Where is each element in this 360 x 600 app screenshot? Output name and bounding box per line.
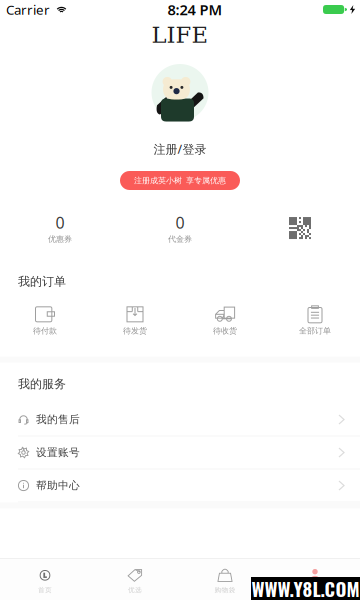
button[interactable]: 我的售后 (0, 403, 360, 436)
staticText: 购物袋 (214, 586, 235, 594)
staticText: 8:24 PM (167, 0, 222, 19)
button[interactable]: 帮助中心 (0, 469, 360, 502)
button[interactable]: 待收货 (180, 306, 270, 336)
button[interactable]: 注册成英小树 享专属优惠 (120, 171, 240, 190)
button[interactable]: 注册/登录 (153, 121, 206, 156)
staticText: 首页 (38, 586, 52, 594)
staticText: 注册/登录 (153, 141, 206, 157)
button[interactable]: 购物袋 (180, 569, 270, 594)
staticText: 代金券 (168, 234, 192, 244)
button[interactable]: 扫一扫 (240, 214, 360, 241)
staticText: 我的售后 (36, 413, 80, 426)
button[interactable]: 全部订单 (270, 306, 360, 336)
button[interactable]: 0 (0, 212, 120, 244)
button[interactable]: 首页 (0, 569, 90, 594)
staticText: WWW.Y8L.COM (251, 575, 359, 600)
staticText: 0 (175, 212, 184, 233)
staticText: 我的服务 (18, 377, 66, 391)
staticText: 帮助中心 (36, 479, 80, 492)
staticText: 设置账号 (36, 446, 80, 459)
staticText: Carrier (6, 1, 50, 18)
staticText: 0 (55, 212, 64, 233)
staticText: 全部订单 (299, 326, 331, 336)
staticText: LIFE (151, 22, 208, 48)
staticText: 我的 (308, 586, 322, 594)
button[interactable]: 我的 (270, 569, 360, 594)
button[interactable]: 优选 (90, 569, 180, 594)
staticText: 注册成英小树 享专属优惠 (134, 176, 226, 185)
staticText: 我的订单 (18, 274, 66, 289)
button[interactable]: 设置账号 (0, 436, 360, 469)
staticText: 待收货 (213, 326, 237, 336)
staticText: 优选 (128, 586, 142, 594)
staticText: 优惠券 (48, 234, 72, 244)
staticText: 待发货 (123, 326, 147, 336)
button[interactable]: 待付款 (0, 306, 90, 336)
button[interactable]: 0 (120, 212, 240, 244)
staticText: 待付款 (33, 326, 57, 336)
button[interactable]: 待发货 (90, 306, 180, 336)
